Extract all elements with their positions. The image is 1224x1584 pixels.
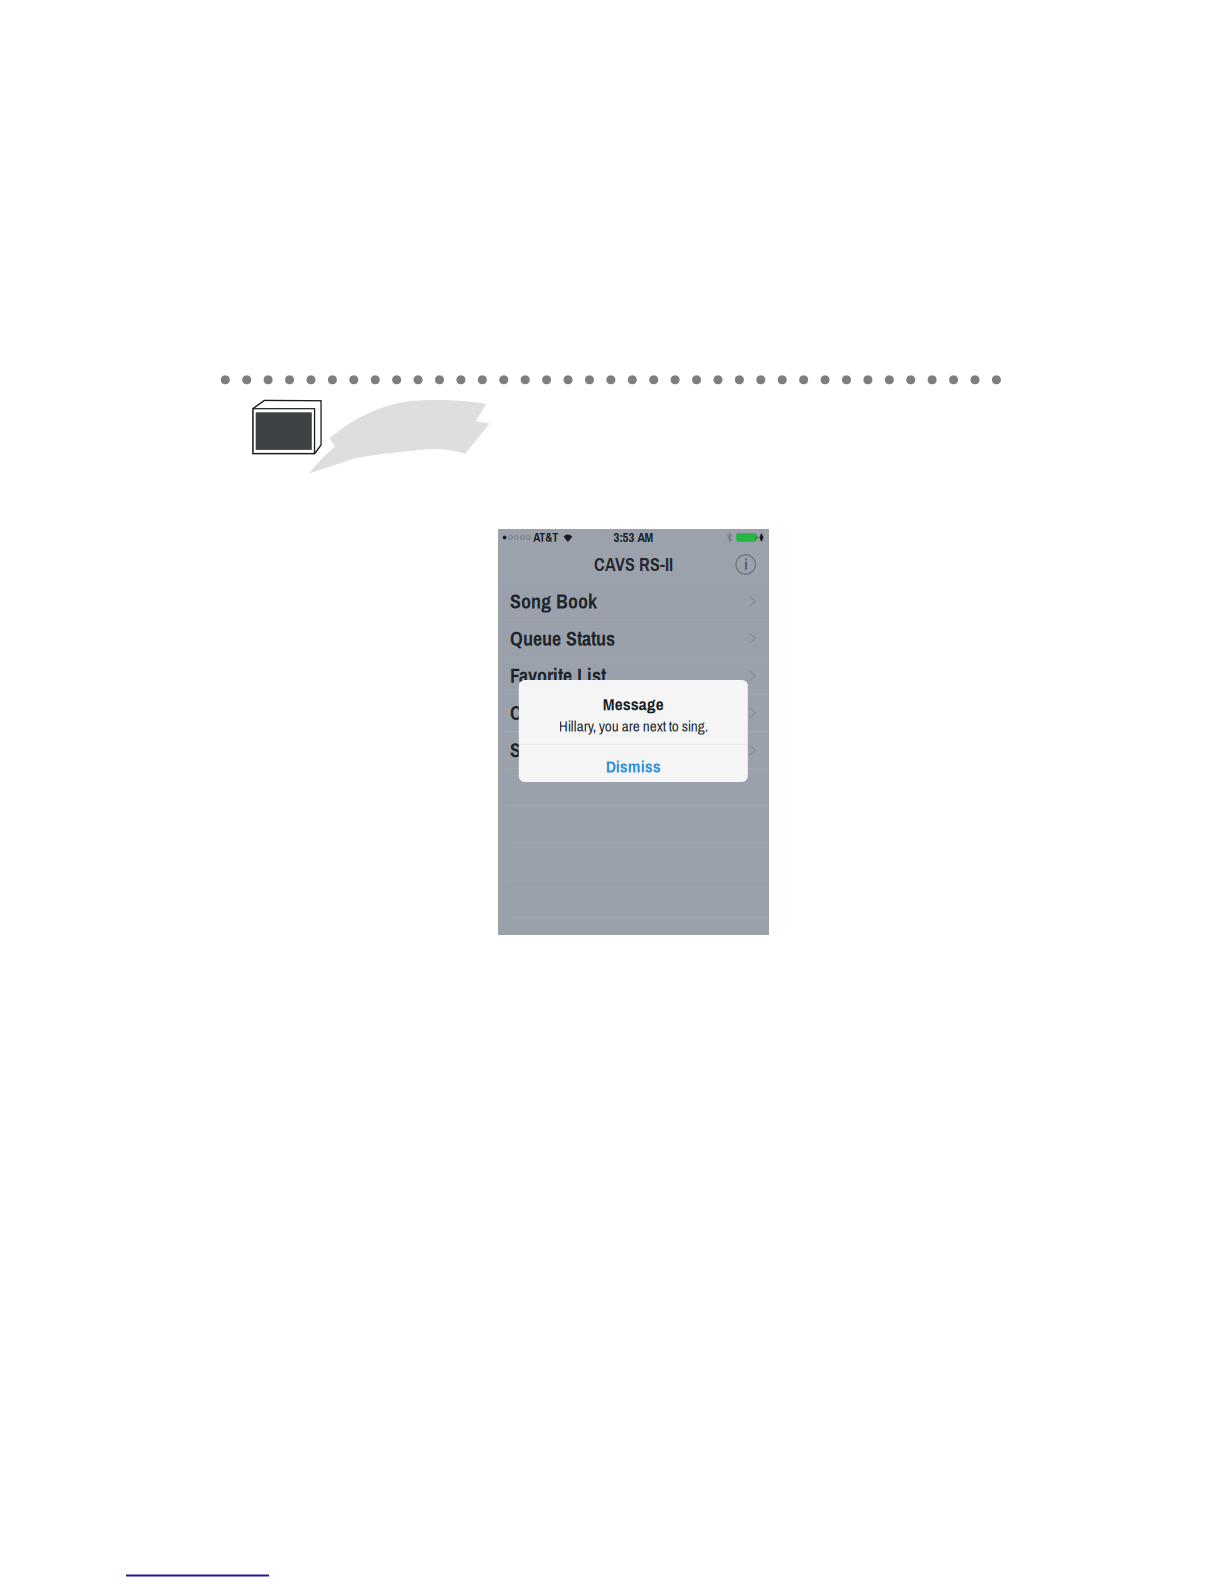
staticText: Control [510, 699, 568, 726]
button[interactable]: Info [732, 550, 760, 578]
button[interactable]: Control [498, 695, 769, 732]
staticText: Queue Status [510, 625, 615, 652]
staticText: Message [603, 692, 664, 716]
button[interactable]: Setting [498, 732, 769, 769]
button[interactable]: Favorite List [498, 657, 769, 695]
staticText: Hillary, you are next to sing. [559, 716, 708, 736]
button[interactable]: Dismiss [519, 744, 748, 784]
staticText: AT&T [533, 529, 558, 546]
button[interactable]: Queue Status [498, 620, 769, 657]
staticText: CAVS RS-II [594, 552, 673, 577]
staticText: i [744, 555, 747, 574]
button[interactable]: Song Book [498, 583, 769, 620]
staticText: Setting [510, 736, 565, 763]
staticText: Dismiss [606, 754, 661, 778]
staticText: Favorite List [510, 662, 606, 689]
staticText: Song Book [510, 588, 597, 615]
staticText: 3:53 AM [613, 529, 653, 546]
